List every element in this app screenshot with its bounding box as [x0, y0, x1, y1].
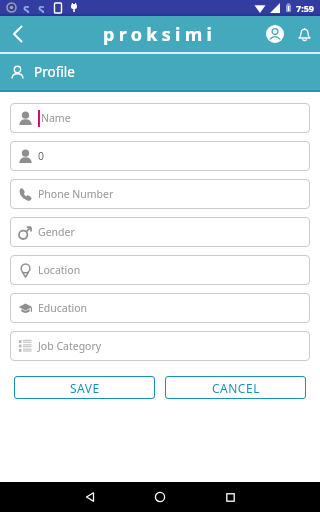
button[interactable]: Education — [10, 293, 310, 323]
staticText: Profile — [34, 63, 75, 81]
staticText: S — [38, 2, 45, 13]
button[interactable]: CANCEL — [165, 376, 306, 399]
staticText: proksimi — [103, 22, 217, 47]
button[interactable]: Gender — [10, 217, 310, 247]
button[interactable]: SAVE — [14, 376, 155, 399]
button[interactable]: Job Category — [10, 331, 310, 361]
button[interactable] — [0, 16, 36, 52]
button[interactable] — [293, 23, 315, 45]
staticText: CANCEL — [212, 380, 260, 396]
button[interactable] — [202, 482, 258, 512]
button[interactable]: Name — [10, 103, 310, 133]
staticText: S — [23, 2, 30, 13]
staticText: Education — [38, 301, 88, 315]
button[interactable] — [132, 482, 188, 512]
staticText: Phone Number — [38, 187, 114, 201]
button[interactable]: Profile — [0, 54, 320, 90]
staticText: Job Category — [38, 339, 102, 353]
staticText: 0 — [38, 149, 45, 163]
button[interactable] — [262, 21, 288, 47]
button[interactable] — [62, 482, 118, 512]
staticText: Location — [38, 263, 81, 277]
staticText: SAVE — [70, 380, 100, 396]
staticText: Name — [41, 111, 71, 125]
button[interactable]: Phone Number — [10, 179, 310, 209]
button[interactable]: Location — [10, 255, 310, 285]
staticText: Gender — [38, 225, 75, 239]
button[interactable]: 0 — [10, 141, 310, 171]
staticText: 7:59 — [296, 2, 314, 14]
